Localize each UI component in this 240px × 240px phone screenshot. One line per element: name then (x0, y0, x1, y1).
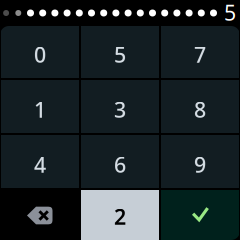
button[interactable]: 1 (1, 80, 79, 133)
button[interactable]: 7 (161, 25, 239, 78)
button[interactable]: 3 (81, 80, 159, 133)
staticText: 7 (194, 40, 206, 69)
button[interactable]: 9 (161, 135, 239, 188)
staticText: 6 (114, 150, 126, 179)
staticText: 1 (34, 95, 46, 124)
button[interactable]: 0 (1, 25, 79, 78)
staticText: 4 (34, 150, 46, 179)
staticText: 5 (224, 0, 236, 27)
staticText: 9 (194, 150, 206, 179)
button[interactable]: 2 (81, 190, 159, 240)
staticText: 8 (194, 95, 206, 124)
staticText: 5 (114, 40, 126, 69)
button[interactable]: Confirm (161, 190, 239, 240)
button[interactable]: 8 (161, 80, 239, 133)
staticText: 0 (34, 40, 46, 69)
button[interactable]: 4 (1, 135, 79, 188)
button[interactable]: 5 (81, 25, 159, 78)
button[interactable]: 6 (81, 135, 159, 188)
staticText: 3 (114, 95, 126, 124)
button[interactable]: Delete (1, 190, 79, 240)
staticText: 2 (114, 202, 126, 231)
